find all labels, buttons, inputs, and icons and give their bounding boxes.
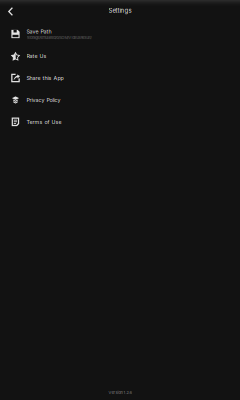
staticText: /storage/emulated/0/SOM/VidEusResult/ [26,35,91,40]
button[interactable]: Rate Us [0,45,240,67]
staticText: Terms of Use [26,119,61,125]
staticText: Save Path [26,28,51,35]
staticText: Rate Us [26,53,46,59]
staticText: Version 1.2.6 [108,390,131,395]
staticText: Share this App [26,75,63,81]
button[interactable]: Back [5,3,16,18]
staticText: Privacy Policy [26,97,60,103]
button[interactable]: Save Path [0,23,240,45]
button[interactable]: Share this App [0,67,240,89]
button[interactable]: Privacy Policy [0,89,240,111]
staticText: Settings [108,7,131,14]
button[interactable]: Terms of Use [0,111,240,133]
